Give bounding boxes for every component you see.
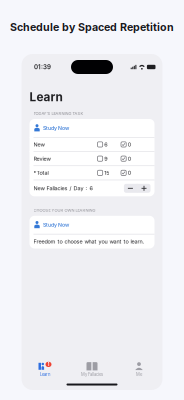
staticText: Study Now (43, 125, 69, 131)
staticText: 01:39 (34, 63, 51, 71)
staticText: Learn (29, 90, 62, 104)
staticText: Freedom to choose what you want to learn… (33, 238, 144, 245)
staticText: My Fallacies (81, 372, 103, 377)
button[interactable]: Me (115, 362, 162, 377)
button[interactable]: Study Now (29, 216, 154, 234)
staticText: Learn (40, 372, 50, 377)
staticText: 0 (128, 141, 131, 148)
staticText: *Total (33, 169, 48, 176)
button[interactable]: My Fallacies (68, 362, 115, 377)
button[interactable]: 1 (21, 362, 68, 377)
staticText: Review (33, 155, 50, 162)
staticText: 0 (128, 169, 131, 176)
button[interactable]: Decrease (124, 184, 137, 193)
staticText: 9 (104, 155, 107, 162)
staticText: Me (136, 372, 142, 377)
staticText: CHOOSE YOUR OWN LEARNING (33, 208, 95, 213)
staticText: 1 (47, 362, 49, 367)
staticText: Schedule by Spaced Repetition (10, 20, 174, 33)
button[interactable]: Study Now (29, 119, 154, 137)
button[interactable]: Increase (137, 184, 150, 193)
staticText: 0 (128, 155, 131, 162)
staticText: 15 (104, 169, 109, 176)
staticText: New Fallacies / Day : 6 (33, 185, 92, 192)
staticText: Study Now (43, 222, 69, 228)
staticText: 6 (104, 141, 107, 148)
staticText: New (33, 141, 44, 148)
staticText: TODAY'S LEARNING TASK (33, 111, 83, 116)
